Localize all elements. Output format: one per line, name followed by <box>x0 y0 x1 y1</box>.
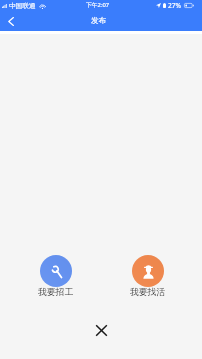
staticText: 下午2:07 <box>86 1 110 9</box>
staticText: 27% <box>168 1 182 10</box>
staticText: 中国联通 <box>9 2 36 10</box>
button[interactable]: 我要找活 <box>118 255 178 298</box>
staticText: 我要找活 <box>130 287 166 298</box>
button[interactable]: Close <box>90 319 112 341</box>
button[interactable]: 我要招工 <box>26 255 86 298</box>
staticText: 我要招工 <box>38 287 74 298</box>
button[interactable]: Back <box>1 11 21 31</box>
staticText: 发布 <box>91 16 107 26</box>
